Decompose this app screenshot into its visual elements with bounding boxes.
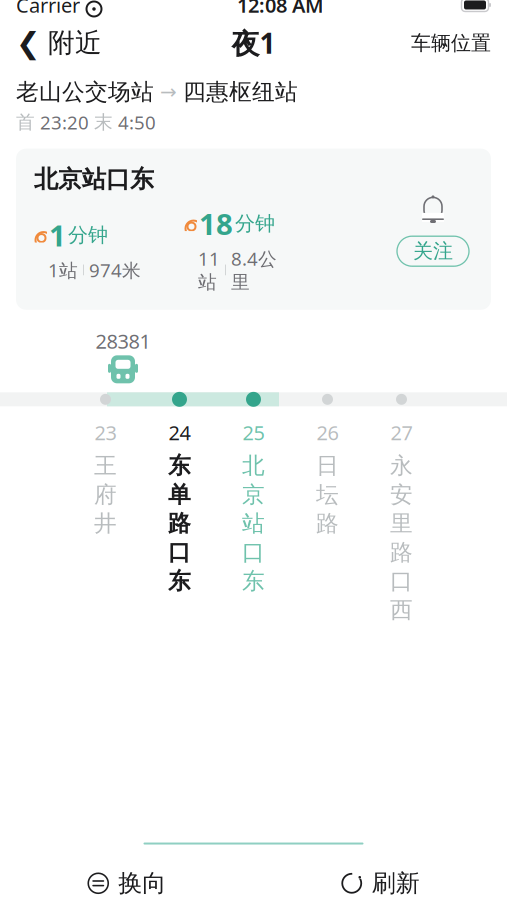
staticText: 换向 <box>118 868 166 898</box>
button[interactable]: 换向 <box>69 860 184 900</box>
staticText: 口 <box>390 567 413 595</box>
staticText: 府 <box>94 481 117 508</box>
staticText: 口 <box>168 538 191 566</box>
staticText: 附近 <box>48 27 102 59</box>
staticText: 23 <box>94 419 116 446</box>
staticText: 口 <box>242 538 265 566</box>
staticText: 分钟 <box>68 223 108 247</box>
staticText: 12:08 AM <box>237 0 324 18</box>
staticText: 东 <box>242 567 265 595</box>
staticText: 夜1 <box>231 24 275 62</box>
staticText: 25 <box>242 419 264 446</box>
staticText: 末 <box>94 111 113 134</box>
staticText: 京 <box>242 481 265 508</box>
staticText: 井 <box>94 510 117 537</box>
staticText: 1 <box>49 216 66 255</box>
staticText: 24 <box>168 419 190 446</box>
staticText: 站 <box>242 510 265 537</box>
staticText: 关注 <box>413 239 453 263</box>
staticText: Carrier <box>16 0 80 18</box>
staticText: 26 <box>316 419 338 446</box>
staticText: 东 <box>168 452 191 480</box>
staticText: 18 <box>199 204 233 243</box>
button[interactable]: 26 <box>290 419 364 630</box>
staticText: 11站 <box>198 246 220 294</box>
staticText: 车辆位置 <box>411 31 491 55</box>
button[interactable]: ❮ <box>0 21 118 65</box>
staticText: 永 <box>390 452 413 480</box>
staticText: 四惠枢纽站 <box>183 78 298 106</box>
staticText: 北京站口东 <box>34 165 154 194</box>
staticText: 分钟 <box>235 211 275 236</box>
button[interactable]: 刷新 <box>323 860 438 900</box>
button[interactable]: 23 <box>68 419 142 630</box>
staticText: 单 <box>168 481 191 508</box>
button[interactable]: 提醒 <box>416 192 450 226</box>
staticText: 日 <box>316 452 339 480</box>
staticText: 27 <box>390 419 412 446</box>
button[interactable]: 27 <box>364 419 438 630</box>
staticText: 坛 <box>316 481 339 508</box>
staticText: 老山公交场站 <box>16 78 154 106</box>
staticText: 里 <box>390 510 413 537</box>
staticText: 北 <box>242 452 265 480</box>
button[interactable]: 24 <box>142 419 216 630</box>
staticText: → <box>160 81 177 103</box>
staticText: ❮ <box>16 26 41 60</box>
staticText: 1站 <box>48 257 78 282</box>
button[interactable]: 车辆位置 <box>395 21 507 65</box>
staticText: 8.4公里 <box>231 246 277 294</box>
staticText: 西 <box>390 596 413 624</box>
staticText: 路 <box>316 510 339 537</box>
button[interactable]: 关注 <box>397 236 469 266</box>
staticText: 首 <box>16 111 35 134</box>
staticText: 28381 <box>95 328 150 354</box>
staticText: 4:50 <box>118 110 156 135</box>
staticText: 王 <box>94 452 117 480</box>
staticText: 路 <box>168 510 191 537</box>
staticText: 路 <box>390 538 413 566</box>
staticText: 刷新 <box>372 868 420 898</box>
button[interactable]: 25 <box>216 419 290 630</box>
staticText: 东 <box>168 567 191 595</box>
staticText: 974米 <box>89 257 141 282</box>
staticText: 安 <box>390 481 413 508</box>
staticText: 23:20 <box>40 110 89 135</box>
